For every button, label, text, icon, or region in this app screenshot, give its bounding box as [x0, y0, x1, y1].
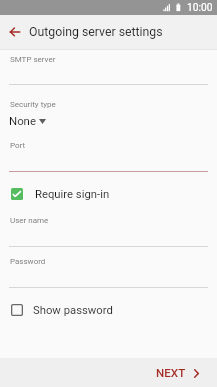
staticText: 10:00 — [187, 2, 213, 14]
staticText: None — [9, 114, 36, 127]
button[interactable]: Require sign-in checkbox — [11, 188, 23, 200]
button[interactable]: NEXT — [146, 361, 217, 385]
staticText: Show password — [33, 304, 113, 317]
staticText: NEXT — [156, 366, 186, 380]
staticText: Security type — [10, 100, 56, 109]
staticText: Port — [10, 141, 26, 150]
staticText: Outgoing server settings — [29, 25, 163, 39]
staticText: Require sign-in — [35, 188, 110, 201]
staticText: SMTP server — [10, 55, 56, 64]
staticText: User name — [10, 216, 49, 225]
button[interactable]: Show password checkbox — [11, 304, 23, 316]
button[interactable]: Back — [2, 18, 30, 46]
staticText: Password — [10, 257, 46, 266]
